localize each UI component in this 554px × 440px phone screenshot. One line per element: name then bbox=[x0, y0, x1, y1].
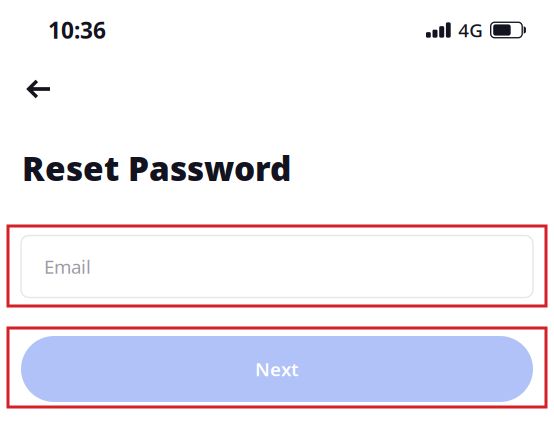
staticText: Next bbox=[255, 357, 299, 381]
staticText: Email bbox=[44, 254, 91, 279]
staticText: 10:36 bbox=[48, 15, 106, 45]
button[interactable]: Next bbox=[8, 328, 546, 407]
button[interactable]: Back bbox=[9, 66, 67, 112]
staticText: Reset Password bbox=[22, 146, 291, 190]
staticText: 4G bbox=[458, 18, 483, 42]
button[interactable]: Email bbox=[8, 226, 546, 306]
